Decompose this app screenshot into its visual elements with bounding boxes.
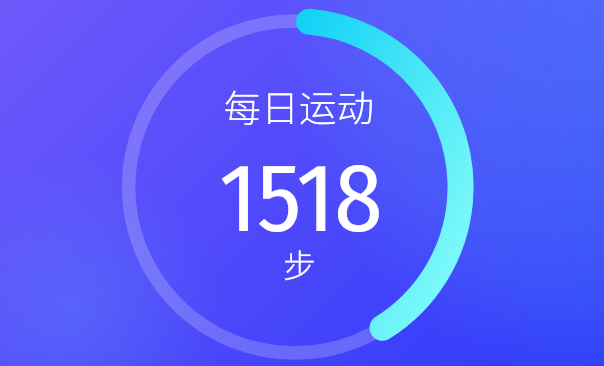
staticText: 步 [283,240,316,288]
button[interactable]: Daily steps progress [0,0,604,366]
staticText: 1518 [219,141,383,257]
staticText: 每日运动 [223,79,375,133]
